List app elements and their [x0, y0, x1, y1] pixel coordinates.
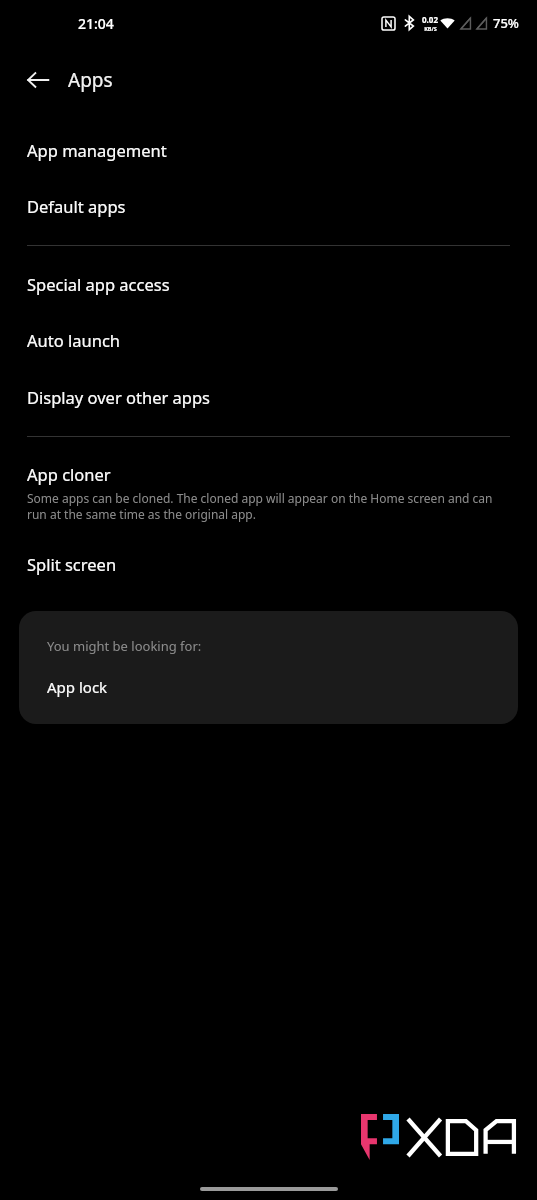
staticText: Display over other apps	[27, 386, 211, 408]
staticText: App lock	[47, 677, 108, 697]
staticText: You might be looking for:	[47, 637, 202, 655]
staticText: Default apps	[27, 195, 126, 217]
staticText: App management	[27, 139, 167, 161]
button[interactable]: Special app access	[0, 255, 537, 313]
staticText: 21:04	[78, 14, 114, 33]
staticText: KB/S	[424, 25, 437, 32]
button[interactable]: Back	[14, 56, 62, 104]
staticText: Split screen	[27, 553, 117, 575]
button[interactable]: Auto launch	[0, 313, 537, 370]
button[interactable]: You might be looking for:	[19, 611, 518, 724]
button[interactable]: Default apps	[0, 179, 537, 236]
staticText: Some apps can be cloned. The cloned app …	[27, 490, 497, 523]
button[interactable]: App cloner	[0, 446, 537, 533]
button[interactable]: Display over other apps	[0, 370, 537, 427]
staticText: Apps	[68, 67, 113, 93]
button[interactable]: Split screen	[0, 533, 537, 593]
staticText: 0.02	[422, 14, 438, 25]
staticText: Auto launch	[27, 329, 120, 351]
button[interactable]: App management	[0, 122, 537, 179]
staticText: 75%	[493, 14, 519, 32]
staticText: Special app access	[27, 273, 170, 295]
staticText: App cloner	[27, 463, 111, 485]
